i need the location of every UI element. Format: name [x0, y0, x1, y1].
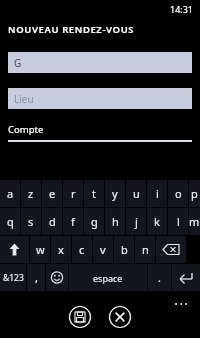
button[interactable]: Enregistrer [68, 305, 92, 329]
button[interactable]: d [42, 208, 62, 235]
staticText: f [71, 214, 75, 229]
button[interactable]: n [135, 236, 155, 263]
staticText: a [7, 186, 14, 201]
staticText: w [36, 242, 45, 257]
button[interactable]: y [105, 180, 125, 207]
staticText: Lieu [14, 92, 34, 106]
staticText: s [28, 214, 34, 229]
staticText: q [7, 214, 14, 229]
staticText: p [191, 186, 198, 201]
staticText: espace [93, 272, 123, 284]
button[interactable]: k [147, 208, 167, 235]
button[interactable]: x [51, 236, 71, 263]
staticText: o [175, 186, 182, 201]
button[interactable]: . [148, 264, 171, 291]
button[interactable]: l [168, 208, 188, 235]
button[interactable]: espace [69, 264, 147, 291]
staticText: y [112, 186, 118, 201]
staticText: j [135, 214, 138, 229]
staticText: &123 [3, 272, 24, 284]
button[interactable]: f [63, 208, 83, 235]
button[interactable]: z [21, 180, 41, 207]
button[interactable]: , [27, 264, 45, 291]
staticText: t [92, 186, 96, 201]
button[interactable]: u [126, 180, 146, 207]
button[interactable]: s [21, 208, 41, 235]
button[interactable]: a [0, 180, 20, 207]
staticText: z [28, 186, 34, 201]
button[interactable]: c [72, 236, 92, 263]
staticText: r [71, 186, 76, 201]
button[interactable]: g [84, 208, 104, 235]
staticText: b [121, 242, 128, 257]
button[interactable]: Shift [0, 236, 29, 263]
button[interactable]: q [0, 208, 20, 235]
staticText: d [49, 214, 56, 229]
staticText: i [156, 186, 159, 201]
button[interactable]: m [189, 208, 200, 235]
staticText: g [91, 214, 98, 229]
button[interactable]: r [63, 180, 83, 207]
staticText: G [14, 56, 22, 70]
button[interactable]: o [168, 180, 188, 207]
button[interactable]: Emoji [46, 264, 68, 291]
button[interactable]: &123 [0, 264, 26, 291]
staticText: , [35, 270, 38, 285]
staticText: k [154, 214, 160, 229]
button[interactable]: G [8, 52, 192, 73]
staticText: NOUVEAU RENDEZ-VOUS [8, 23, 135, 36]
staticText: x [58, 242, 64, 257]
button[interactable]: Compte [8, 123, 192, 142]
staticText: h [112, 214, 119, 229]
button[interactable]: v [93, 236, 113, 263]
staticText: l [177, 214, 180, 229]
button[interactable]: i [147, 180, 167, 207]
staticText: m [189, 214, 200, 229]
button[interactable]: j [126, 208, 146, 235]
button[interactable]: e [42, 180, 62, 207]
button[interactable]: Annuler [108, 305, 132, 329]
staticText: n [142, 242, 149, 257]
staticText: Compte [8, 123, 44, 136]
staticText: e [49, 186, 56, 201]
button[interactable]: h [105, 208, 125, 235]
button[interactable]: b [114, 236, 134, 263]
button[interactable]: w [30, 236, 50, 263]
button[interactable]: t [84, 180, 104, 207]
button[interactable]: p [189, 180, 200, 207]
button[interactable]: Lieu [8, 88, 192, 109]
button[interactable]: Backspace [156, 236, 186, 263]
button[interactable]: Enter [172, 264, 200, 291]
staticText: . [158, 270, 161, 285]
staticText: v [100, 242, 106, 257]
staticText: u [133, 186, 140, 201]
button[interactable]: Plus d'options [170, 297, 192, 311]
staticText: c [79, 242, 85, 257]
staticText: 14:31 [170, 3, 194, 15]
